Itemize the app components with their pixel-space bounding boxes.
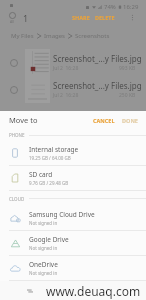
staticText: 250 KB (119, 92, 136, 99)
staticText: Samsung Cloud Drive (29, 210, 95, 219)
staticText: www.deuaq.com (46, 283, 141, 299)
button[interactable]: Internal storage (0, 141, 146, 165)
button[interactable]: SD card (0, 166, 146, 190)
staticText: Not signed in (29, 220, 58, 226)
staticText: 19.25 GB / 64.00 GB (29, 155, 71, 161)
button[interactable]: Screenshot_...y Files.jpg (0, 76, 146, 103)
staticText: Move to (9, 115, 38, 125)
staticText: Google Drive (29, 235, 69, 244)
staticText: OneDrive (29, 260, 58, 269)
button[interactable]: DELETE (95, 14, 115, 21)
button[interactable]: SHARE (72, 14, 90, 21)
staticText: All (10, 19, 15, 24)
staticText: SD card (29, 170, 53, 179)
button[interactable]: Screenshots (75, 32, 110, 40)
button[interactable]: Google Drive (0, 231, 146, 255)
button[interactable]: Select all (9, 12, 16, 24)
button[interactable]: Images (44, 32, 65, 40)
staticText: 16:29 (123, 3, 139, 11)
button[interactable]: My Files (11, 32, 34, 40)
staticText: 74% (104, 3, 116, 11)
staticText: Not signed in (29, 270, 58, 276)
button[interactable]: Screenshot_...y Files.jpg (0, 49, 146, 76)
button[interactable]: Recents (25, 286, 35, 296)
staticText: Jul 2 16:28 (53, 92, 79, 99)
staticText: 9.76 GB / 29.48 GB (29, 180, 69, 186)
staticText: Screenshot_...y Files.jpg (53, 80, 142, 91)
staticText: 993 KB (119, 65, 136, 72)
staticText: Not signed in (29, 245, 58, 251)
staticText: Internal storage (29, 145, 79, 154)
staticText: Jul 2 16:28 (53, 65, 79, 72)
staticText: CLOUD (9, 196, 25, 202)
button[interactable]: CANCEL (93, 117, 115, 124)
button[interactable]: Samsung Cloud Drive (0, 206, 146, 230)
button[interactable]: More options (128, 13, 137, 22)
button[interactable]: DONE (122, 117, 138, 124)
staticText: 1 (23, 12, 29, 24)
staticText: PHONE (9, 132, 25, 138)
staticText: Screenshot_...y Files.jpg (53, 53, 142, 64)
button[interactable]: OneDrive (0, 256, 146, 280)
